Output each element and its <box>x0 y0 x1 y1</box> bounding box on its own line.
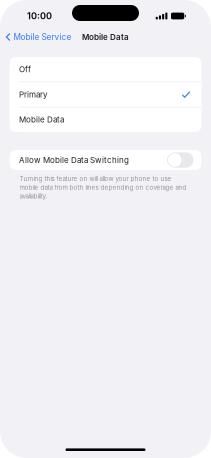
staticText: Turning this feature on will allow your … <box>19 175 171 182</box>
staticText: Mobile Service <box>14 32 72 42</box>
staticText: Mobile Data <box>19 115 64 124</box>
staticText: Primary <box>19 90 47 99</box>
button[interactable]: Primary <box>9 82 201 107</box>
button[interactable]: Allow Mobile Data Switching <box>9 150 201 170</box>
button[interactable]: Mobile Data <box>9 107 201 132</box>
staticText: Off <box>19 64 31 74</box>
staticText: mobile data from both lines depending on… <box>19 184 186 191</box>
staticText: availability. <box>19 192 47 200</box>
staticText: Mobile Data <box>82 32 129 42</box>
button[interactable]: Mobile Service <box>0 29 76 45</box>
staticText: 10:00 <box>27 10 52 21</box>
staticText: Allow Mobile Data Switching <box>19 155 129 165</box>
button[interactable]: Off <box>9 57 201 82</box>
